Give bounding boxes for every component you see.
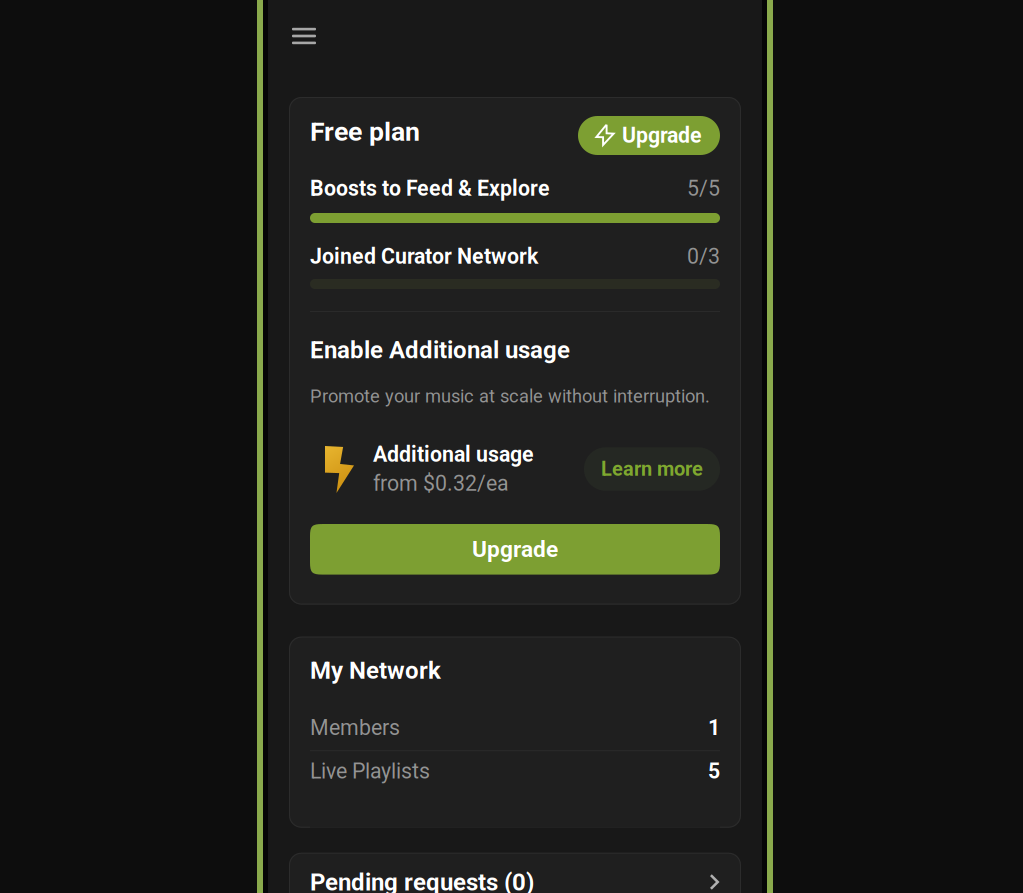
staticText: Pending requests (0) — [310, 868, 534, 893]
staticText: 5/5 — [687, 176, 720, 201]
staticText: Additional usage — [373, 442, 534, 467]
staticText: Upgrade — [472, 536, 558, 563]
staticText: My Network — [310, 657, 441, 685]
staticText: Free plan — [310, 116, 420, 147]
staticText: Enable Additional usage — [310, 336, 570, 364]
button[interactable]: Upgrade — [578, 116, 720, 155]
staticText: 5 — [708, 759, 720, 784]
staticText: Joined Curator Network — [310, 244, 538, 269]
staticText: from $0.32/ea — [373, 471, 509, 496]
staticText: Boosts to Feed & Explore — [310, 176, 550, 201]
button[interactable]: Pending requests (0) — [289, 853, 741, 893]
button[interactable]: Learn more — [584, 447, 720, 491]
staticText: Members — [310, 715, 400, 740]
button[interactable]: Upgrade — [310, 524, 720, 575]
staticText: 1 — [708, 715, 720, 740]
staticText: Promote your music at scale without inte… — [310, 386, 710, 407]
button[interactable]: Menu — [268, 0, 332, 55]
staticText: Live Playlists — [310, 759, 430, 784]
staticText: 0/3 — [687, 244, 720, 269]
staticText: Upgrade — [622, 123, 702, 148]
staticText: Learn more — [601, 457, 703, 481]
